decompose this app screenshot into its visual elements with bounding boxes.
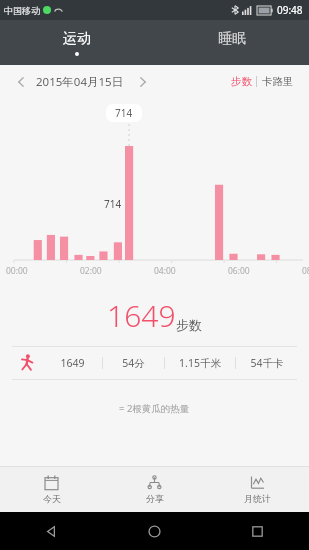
button[interactable]: Recents <box>206 512 309 550</box>
staticText: 1649 <box>60 356 85 370</box>
staticText: 54分 <box>122 356 145 370</box>
button[interactable]: 运动 <box>0 20 154 65</box>
staticText: 1649 <box>107 295 176 336</box>
staticText: 06:00 <box>228 265 250 277</box>
staticText: 卡路里 <box>262 75 294 88</box>
staticText: 1.15千米 <box>179 356 221 370</box>
staticText: 2015年04月15日 <box>36 74 124 90</box>
staticText: 步数 <box>176 317 202 333</box>
button[interactable]: 睡眠 <box>154 20 309 65</box>
staticText: 分享 <box>146 493 164 504</box>
staticText: 04:00 <box>154 265 176 277</box>
staticText: 54千卡 <box>250 356 284 370</box>
staticText: 08:00 <box>302 265 309 277</box>
button[interactable]: 步数 <box>227 72 256 91</box>
staticText: 月统计 <box>244 493 271 504</box>
button[interactable]: 月统计 <box>206 467 309 512</box>
button[interactable]: Home <box>103 512 206 550</box>
button[interactable]: 分享 <box>103 467 206 512</box>
button[interactable]: Next day <box>132 71 154 93</box>
staticText: = 2根黄瓜的热量 <box>119 402 190 415</box>
button[interactable]: 卡路里 <box>257 72 299 91</box>
button[interactable]: 今天 <box>0 467 103 512</box>
button[interactable]: Previous day <box>10 71 32 93</box>
staticText: 714 <box>104 197 122 211</box>
staticText: 运动 <box>63 30 91 48</box>
staticText: 今天 <box>43 493 61 504</box>
staticText: 02:00 <box>80 265 102 277</box>
staticText: 中国移动 <box>4 5 40 16</box>
staticText: 步数 <box>231 75 252 88</box>
staticText: 00:00 <box>6 265 28 277</box>
staticText: 714 <box>115 106 133 120</box>
button[interactable]: Back <box>0 512 103 550</box>
staticText: 睡眠 <box>218 30 246 48</box>
staticText: 09:48 <box>277 3 303 17</box>
